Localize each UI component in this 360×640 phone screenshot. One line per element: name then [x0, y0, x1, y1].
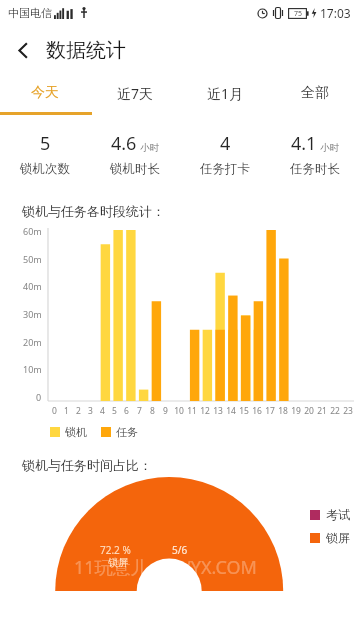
staticText: 任务打卡 [200, 161, 250, 177]
staticText: 75 [294, 9, 303, 19]
staticText: 锁机 [65, 425, 87, 439]
staticText: 16 [252, 405, 262, 417]
staticText: 3 [88, 405, 93, 417]
staticText: 14 [226, 405, 236, 417]
staticText: 4.1 [291, 131, 317, 156]
button[interactable]: Back [0, 27, 46, 73]
staticText: 4.6 [111, 131, 137, 156]
staticText: 17 [265, 405, 275, 417]
staticText: 72.2 % [100, 543, 131, 557]
staticText: 40m [23, 280, 42, 290]
staticText: 中国电信 [8, 6, 52, 20]
staticText: 11 [187, 405, 197, 417]
staticText: 20 [304, 405, 314, 417]
staticText: 11玩意儿·11WYX.COM [74, 555, 257, 580]
staticText: 10m [23, 363, 42, 373]
staticText: 1 [64, 405, 69, 417]
staticText: 锁屏 [326, 530, 350, 545]
staticText: 锁机次数 [20, 161, 70, 177]
staticText: 21 [317, 405, 327, 417]
staticText: 10 [174, 405, 184, 417]
staticText: 小时 [140, 142, 159, 154]
staticText: 23 [343, 405, 353, 417]
staticText: 锁机与任务各时段统计： [22, 203, 165, 219]
staticText: 2 [76, 405, 81, 417]
staticText: 6 [124, 405, 129, 417]
staticText: 近7天 [117, 84, 154, 103]
staticText: 5 [112, 405, 117, 417]
button[interactable]: 近7天 [90, 74, 180, 112]
staticText: 今天 [31, 84, 59, 102]
staticText: 19 [291, 405, 301, 417]
staticText: 20m [23, 336, 42, 346]
staticText: 近1月 [207, 84, 244, 103]
button[interactable]: 近1月 [180, 74, 270, 112]
staticText: 18 [278, 405, 288, 417]
staticText: 30m [23, 308, 42, 318]
staticText: 8 [150, 405, 155, 417]
staticText: 任务时长 [290, 161, 340, 177]
staticText: 22 [330, 405, 340, 417]
staticText: 0 [52, 405, 57, 417]
staticText: 任务 [116, 425, 138, 439]
staticText: 50m [23, 253, 42, 263]
staticText: 17:03 [320, 5, 351, 21]
staticText: 锁机时长 [110, 161, 160, 177]
staticText: 60m [23, 225, 42, 235]
staticText: 4 [220, 131, 231, 156]
staticText: 4 [100, 405, 105, 417]
button[interactable]: 今天 [0, 74, 90, 112]
staticText: 15 [239, 405, 249, 417]
staticText: 12 [200, 405, 210, 417]
staticText: 5/6 [172, 543, 188, 557]
staticText: 13 [213, 405, 223, 417]
staticText: 7 [137, 405, 142, 417]
staticText: 小时 [320, 142, 339, 154]
staticText: 锁屏 [108, 556, 128, 569]
button[interactable]: 全部 [270, 74, 360, 112]
staticText: 全部 [301, 84, 329, 102]
staticText: 数据统计 [46, 38, 126, 63]
staticText: 9 [163, 405, 168, 417]
staticText: 考试 [326, 507, 350, 522]
staticText: 5 [40, 131, 51, 156]
staticText: 0 [36, 391, 42, 401]
staticText: 锁机与任务时间占比： [22, 457, 152, 473]
